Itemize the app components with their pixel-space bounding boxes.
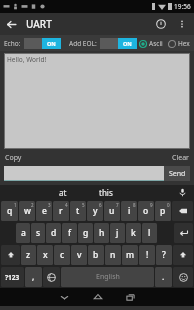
button[interactable]: [4, 166, 164, 181]
button[interactable]: e: [36, 201, 52, 221]
staticText: v: [77, 249, 82, 261]
staticText: ?: [162, 249, 166, 261]
staticText: Add EOL:: [69, 39, 97, 48]
staticText: 6: [99, 202, 102, 208]
button[interactable]: Info: [150, 13, 172, 35]
button[interactable]: Home: [81, 288, 114, 306]
button[interactable]: t: [70, 201, 86, 221]
staticText: 3: [48, 202, 51, 208]
button[interactable]: ON: [100, 38, 137, 49]
staticText: Ascii: [149, 39, 163, 48]
button[interactable]: x: [37, 245, 53, 265]
button[interactable]: g: [78, 223, 93, 243]
button[interactable]: .: [155, 267, 172, 287]
button[interactable]: !: [139, 245, 155, 265]
staticText: i: [128, 205, 131, 217]
button[interactable]: Back: [0, 13, 22, 35]
button[interactable]: h: [94, 223, 109, 243]
staticText: c: [60, 249, 65, 261]
button[interactable]: z: [21, 245, 36, 265]
staticText: m: [126, 249, 135, 261]
button[interactable]: English: [61, 267, 154, 287]
staticText: 8: [133, 202, 136, 208]
button[interactable]: m: [122, 245, 138, 265]
staticText: u: [109, 205, 115, 217]
staticText: ?123: [5, 273, 20, 282]
staticText: b: [93, 249, 99, 261]
button[interactable]: More options: [172, 14, 192, 34]
staticText: this: [99, 187, 113, 198]
button[interactable]: r: [53, 201, 69, 221]
button[interactable]: d: [46, 223, 61, 243]
button[interactable]: k: [126, 223, 141, 243]
staticText: a: [21, 227, 26, 239]
button[interactable]: Change language: [43, 267, 60, 287]
staticText: 5: [82, 202, 85, 208]
button[interactable]: a: [16, 223, 30, 243]
staticText: f: [68, 227, 72, 239]
staticText: at: [59, 187, 67, 198]
button[interactable]: n: [105, 245, 121, 265]
staticText: 4: [65, 202, 68, 208]
button[interactable]: Shift: [1, 245, 20, 265]
button[interactable]: at: [42, 185, 84, 200]
button[interactable]: Ascii: [139, 39, 163, 48]
staticText: k: [131, 227, 136, 239]
staticText: h: [99, 227, 105, 239]
button[interactable]: Emoji: [173, 267, 193, 287]
button[interactable]: p: [155, 201, 171, 221]
button[interactable]: b: [88, 245, 104, 265]
staticText: 7: [116, 202, 119, 208]
staticText: 1: [14, 202, 17, 208]
button[interactable]: this: [84, 185, 127, 200]
staticText: d: [51, 227, 57, 239]
button[interactable]: c: [54, 245, 70, 265]
staticText: !: [146, 249, 149, 261]
staticText: r: [59, 205, 63, 217]
button[interactable]: v: [71, 245, 87, 265]
button[interactable]: y: [87, 201, 103, 221]
button[interactable]: Voice input: [170, 185, 194, 200]
button[interactable]: s: [31, 223, 45, 243]
button[interactable]: Hello, World!: [4, 53, 190, 149]
staticText: ,: [32, 271, 35, 283]
staticText: 2: [31, 202, 34, 208]
staticText: s: [36, 227, 41, 239]
button[interactable]: l: [142, 223, 157, 243]
button[interactable]: Hide keyboard: [48, 288, 81, 306]
button[interactable]: ,: [25, 267, 42, 287]
button[interactable]: f: [62, 223, 77, 243]
button[interactable]: w: [19, 201, 35, 221]
staticText: Hex: [178, 39, 190, 48]
button[interactable]: ?: [156, 245, 172, 265]
staticText: Hello, World!: [7, 55, 47, 64]
staticText: o: [143, 205, 149, 217]
staticText: e: [42, 205, 47, 217]
staticText: .: [162, 271, 165, 283]
staticText: 0: [167, 202, 170, 208]
button[interactable]: Hex: [168, 39, 190, 48]
button[interactable]: Enter: [174, 223, 193, 243]
button[interactable]: Send: [164, 166, 190, 181]
button[interactable]: Recent apps: [114, 288, 147, 306]
staticText: Clear: [172, 153, 189, 163]
button[interactable]: Backspace: [172, 201, 193, 221]
button[interactable]: Clear: [172, 153, 189, 163]
staticText: l: [148, 227, 151, 239]
staticText: g: [83, 227, 89, 239]
button[interactable]: ?123: [1, 267, 24, 287]
button[interactable]: o: [138, 201, 154, 221]
button[interactable]: j: [110, 223, 125, 243]
button[interactable]: i: [121, 201, 137, 221]
button[interactable]: u: [104, 201, 120, 221]
button[interactable]: q: [1, 201, 18, 221]
button[interactable]: Shift: [173, 245, 193, 265]
button[interactable]: Copy: [5, 153, 22, 163]
staticText: Echo:: [4, 39, 21, 48]
button[interactable]: ON: [24, 38, 61, 49]
staticText: x: [43, 249, 48, 261]
staticText: 9: [150, 202, 153, 208]
staticText: j: [116, 227, 119, 239]
